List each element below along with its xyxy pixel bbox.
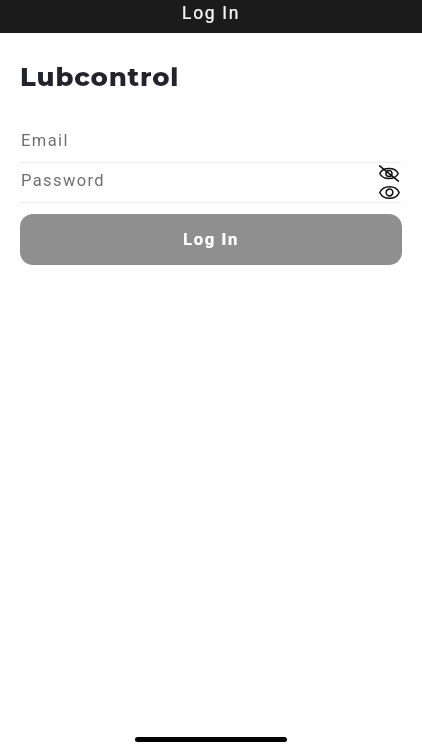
button[interactable]: Email bbox=[0, 130, 422, 162]
staticText: Log In bbox=[182, 3, 241, 24]
staticText: Password bbox=[21, 171, 106, 190]
button[interactable]: Show password bbox=[379, 186, 400, 199]
button[interactable]: Log In bbox=[20, 214, 402, 265]
staticText: Lubcontrol bbox=[20, 61, 180, 93]
staticText: Log In bbox=[183, 230, 240, 249]
staticText: Email bbox=[21, 131, 69, 150]
button[interactable]: Password bbox=[0, 170, 422, 202]
button[interactable]: Hide password bbox=[379, 165, 399, 182]
